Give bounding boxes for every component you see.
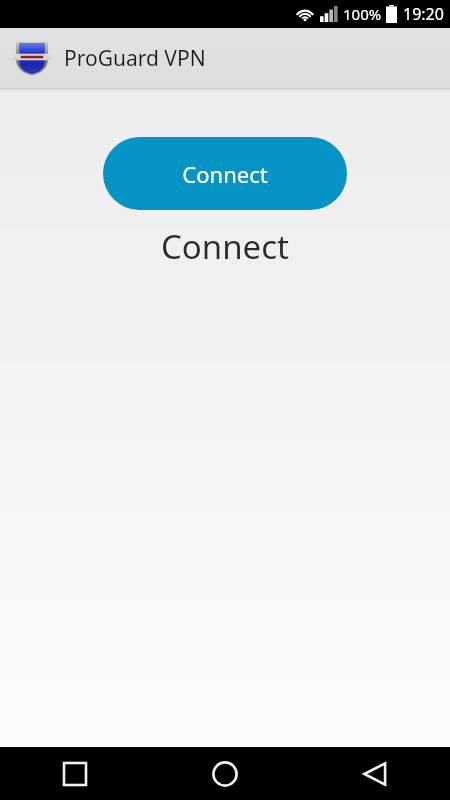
staticText: 100% <box>343 4 382 24</box>
button[interactable]: Connect <box>103 137 347 210</box>
staticText: Connect <box>182 159 268 189</box>
button[interactable]: Recents <box>0 747 150 800</box>
button[interactable]: Home <box>150 747 300 800</box>
staticText: ProGuard VPN <box>64 44 206 73</box>
staticText: 19:20 <box>403 3 444 25</box>
button[interactable]: Back <box>300 747 450 800</box>
staticText: Connect <box>161 224 289 269</box>
